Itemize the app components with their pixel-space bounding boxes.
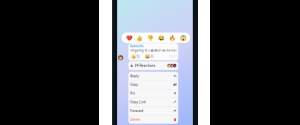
button[interactable]: Copy Link [128, 98, 178, 106]
button[interactable]: Pin [128, 89, 178, 98]
staticText: 🔥 [169, 35, 176, 41]
staticText: 12 [136, 55, 139, 58]
staticText: 😱 [180, 35, 187, 41]
button[interactable]: 24 Reactions [128, 61, 178, 70]
button[interactable]: React 👍 [136, 35, 143, 41]
button[interactable]: React 😱 [180, 35, 187, 41]
button[interactable]: React 😂 [158, 35, 165, 41]
button[interactable]: 👍 [130, 54, 140, 59]
button[interactable]: Forward [128, 107, 178, 115]
staticText: 👎 [147, 35, 154, 41]
button[interactable]: Delete [128, 115, 178, 124]
button[interactable]: Reply [128, 72, 178, 80]
staticText: I'm going to Lapland! Ho-ho-ho! [130, 49, 177, 52]
button[interactable]: React ❤️ [126, 35, 133, 41]
staticText: Forward [130, 109, 143, 113]
staticText: 8 [151, 55, 153, 58]
staticText: ❤️ [126, 35, 133, 41]
button[interactable]: 😀 [144, 54, 154, 59]
staticText: 24 Reactions [134, 64, 155, 67]
staticText: Gabrielle [130, 44, 144, 48]
staticText: Pin [130, 92, 135, 95]
staticText: 13:21 [170, 55, 177, 58]
staticText: 😀 [145, 54, 150, 59]
button[interactable]: React 👎 [147, 35, 154, 41]
button[interactable]: Copy [128, 80, 178, 89]
staticText: 😂 [158, 35, 165, 41]
staticText: Copy [130, 83, 138, 87]
staticText: Copy Link [130, 100, 146, 104]
staticText: Reply [130, 74, 139, 78]
staticText: 👍 [136, 35, 143, 41]
button[interactable]: React 🔥 [169, 35, 176, 41]
staticText: Delete [130, 118, 140, 121]
staticText: 👍 [131, 54, 136, 59]
